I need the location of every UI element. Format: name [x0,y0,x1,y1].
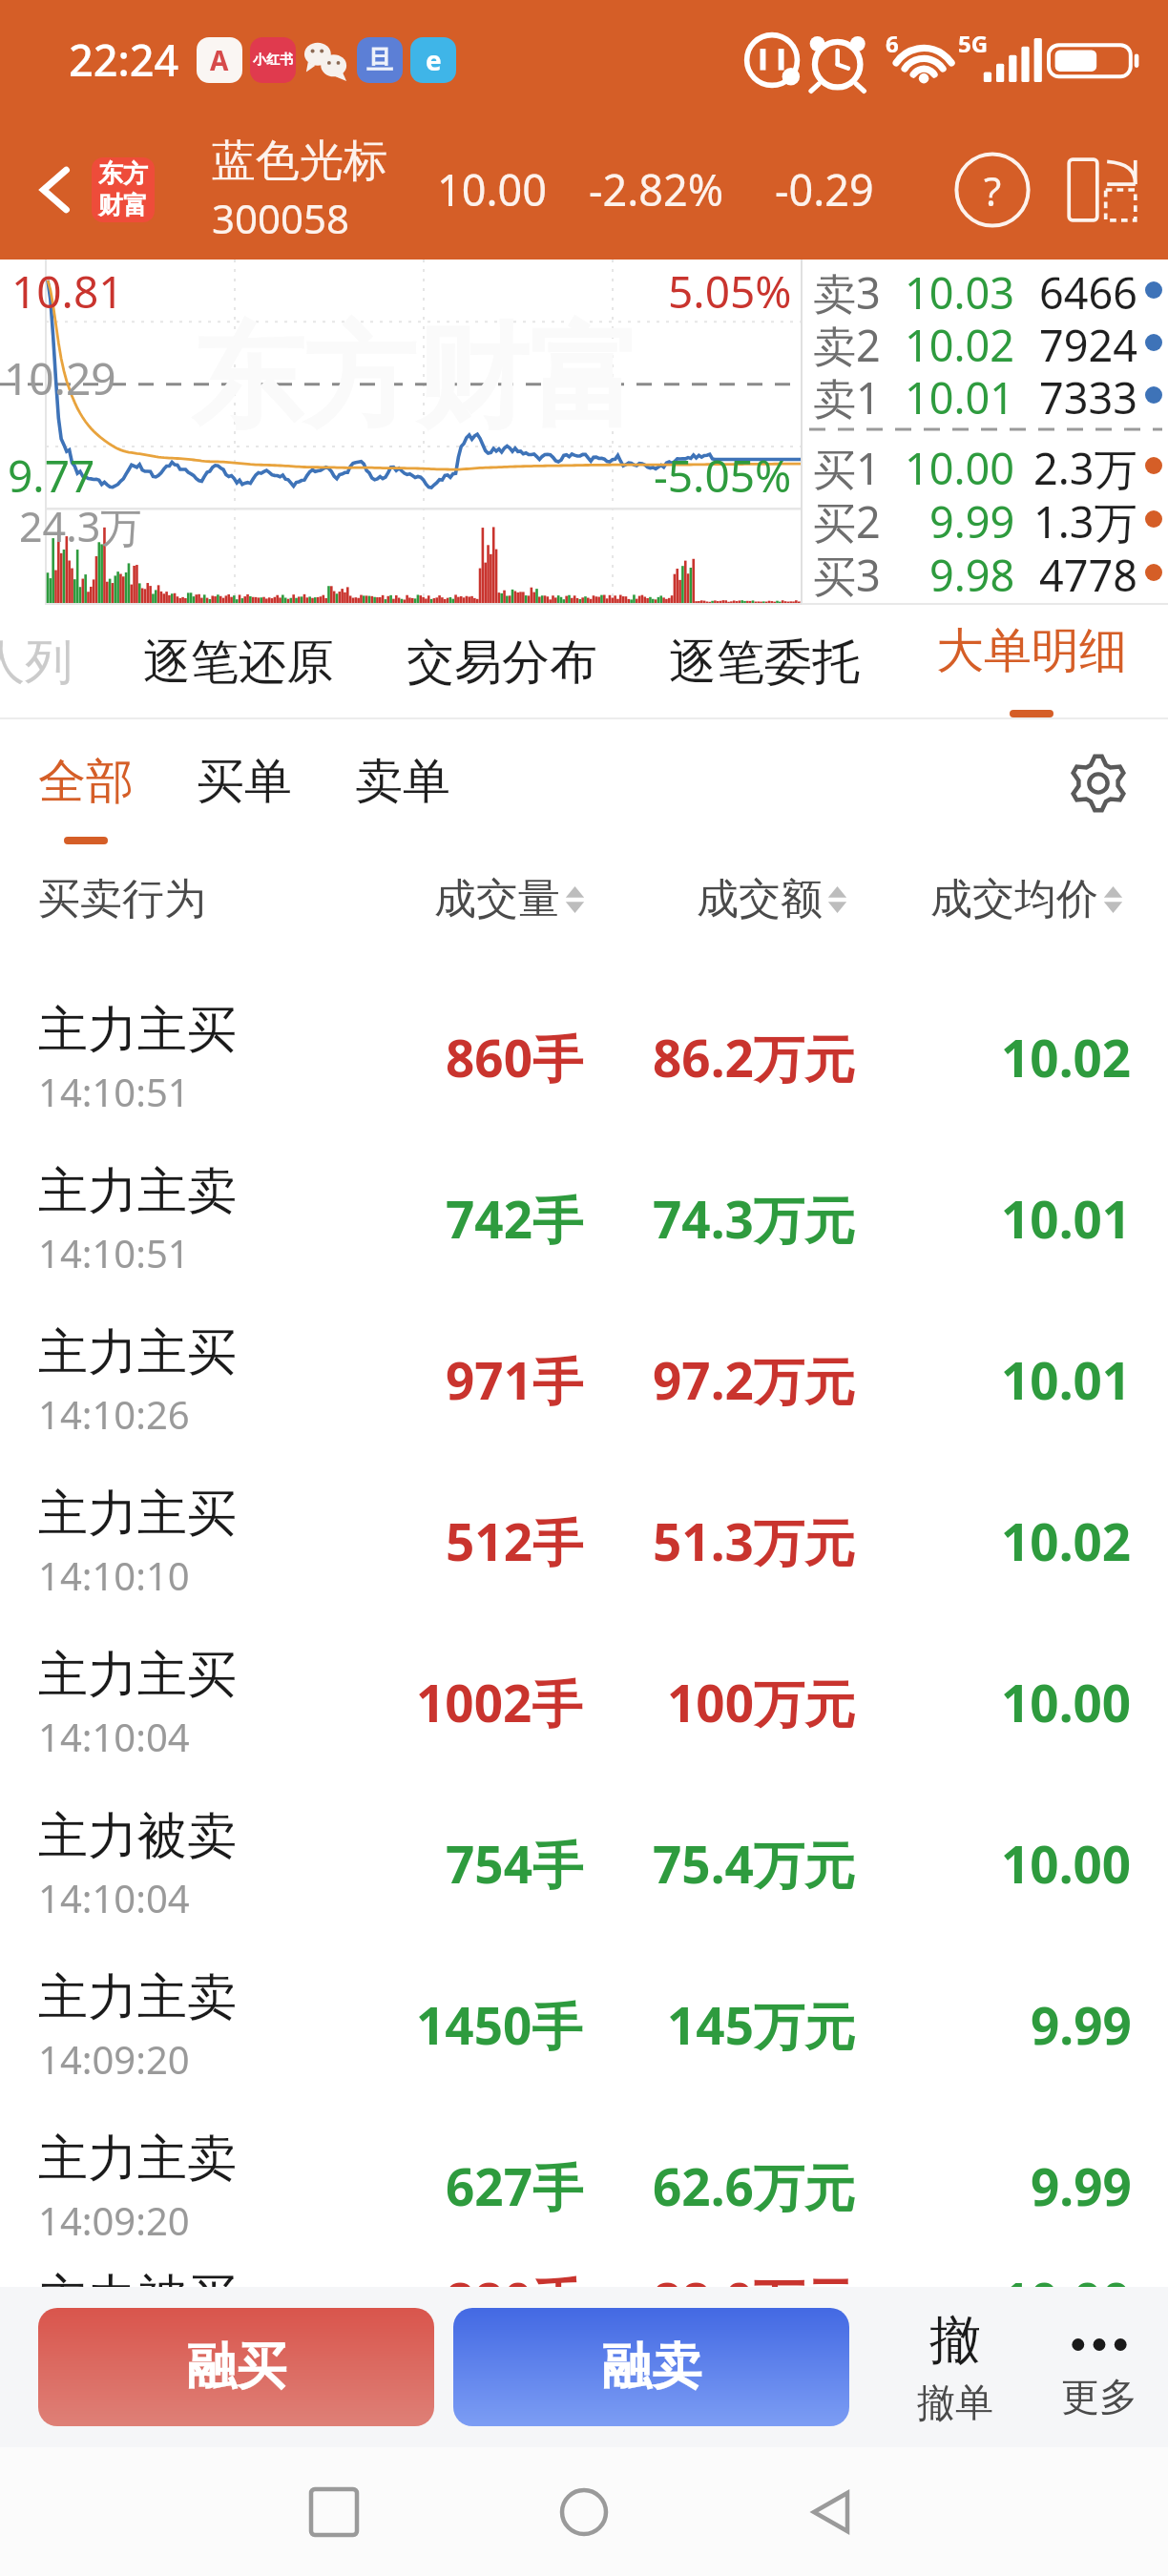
button[interactable]: 全部 [38,752,134,844]
staticText: 融买 [187,2336,286,2399]
button[interactable]: 卖1 [813,368,1168,422]
button[interactable]: 主力主买 [0,980,1168,1141]
button[interactable]: 主力主买 [0,1625,1168,1786]
staticText: 买单 [197,752,292,812]
staticText: 742手 [446,1184,583,1253]
button[interactable]: 成交均价 [930,873,1123,925]
button[interactable]: 买2 [813,492,1168,546]
staticText: 51.3万元 [653,1506,855,1575]
staticText: 9.99 [929,492,1015,546]
staticText: 10.02 [905,316,1015,368]
button[interactable]: 卖单 [355,752,450,844]
staticText: 14:09:20 [38,2194,190,2246]
staticText: -2.82% [589,160,724,218]
staticText: 主力主买 [38,1483,237,1546]
staticText: 大单明细 [936,621,1127,681]
button[interactable]: 主力被卖 [0,1786,1168,1947]
button[interactable]: 成交额 [697,873,847,925]
staticText: 6466 [1039,263,1137,316]
button[interactable]: 主力主卖 [0,2109,1168,2270]
staticText: 22:24 [69,31,179,89]
staticText: 1450手 [416,1990,583,2059]
button[interactable]: 主力主买 [0,1302,1168,1464]
staticText: 主力主买 [38,1644,237,1707]
staticText: 14:10:04 [38,1872,190,1923]
staticText: 14:10:04 [38,1711,190,1762]
staticText: 买2 [813,492,881,546]
staticText: 10.02 [1001,1023,1132,1091]
staticText: 卖1 [813,368,881,422]
button[interactable]: 卖2 [813,316,1168,368]
staticText: 主力被买 [38,2267,237,2296]
button[interactable]: More [1037,2287,1161,2447]
button[interactable]: 撤 [893,2287,1017,2447]
staticText: 100万元 [667,1668,855,1736]
button[interactable]: Home [536,2464,632,2560]
staticText: 东方财富 [191,307,641,449]
staticText: 撤 [929,2308,981,2373]
button[interactable]: 买3 [813,546,1168,599]
button[interactable]: 主力主买 [0,1464,1168,1625]
staticText: 主力主卖 [38,1966,237,2029]
staticText: 6 [886,28,899,59]
staticText: 74.3万元 [653,1184,855,1253]
staticText: 10.29 [4,348,116,408]
staticText: 512手 [446,1506,583,1575]
staticText: 9.99 [1031,1990,1132,2059]
button[interactable]: 交易分布 [370,605,633,719]
staticText: 754手 [446,1829,583,1898]
staticText: 逐笔还原 [143,633,334,693]
button[interactable]: 融买 [38,2308,434,2426]
staticText: 14:10:26 [38,1388,190,1440]
button[interactable]: Settings [1061,746,1136,821]
staticText: 卖2 [813,316,881,368]
staticText: 10.01 [1001,1345,1132,1414]
staticText: 86.2万元 [653,1023,855,1091]
staticText: 买卖行为 [38,873,206,925]
staticText: 7924 [1039,316,1137,368]
staticText: 14:10:51 [38,1227,190,1278]
staticText: 成交均价 [930,873,1098,925]
staticText: 10.81 [11,261,124,322]
staticText: 145万元 [667,1990,855,2059]
staticText: 更多 [1061,2373,1137,2420]
staticText: -5.05% [654,446,792,506]
button[interactable]: 逐笔还原 [107,605,370,719]
staticText: 14:10:51 [38,1066,190,1117]
staticText: 10.01 [905,368,1015,422]
button[interactable]: 卖3 [813,263,1168,316]
staticText: 75.4万元 [653,1829,855,1898]
button[interactable]: 主力主卖 [0,1141,1168,1302]
staticText: 10.00 [1001,1668,1132,1736]
staticText: -0.29 [775,160,874,218]
staticText: 880手 [446,2266,583,2296]
button[interactable]: 人列 [0,605,107,719]
staticText: 东方 [98,158,148,190]
staticText: 4778 [1039,546,1137,599]
staticText: A [210,42,229,78]
button[interactable]: Rotate screen [1050,137,1155,242]
staticText: 财富 [98,190,148,221]
button[interactable]: 买1 [813,439,1168,492]
button[interactable]: Back [8,119,103,260]
staticText: 蓝色光标 [212,134,387,189]
staticText: 成交量 [434,873,560,925]
staticText: 10.00 [1001,1829,1132,1898]
button[interactable]: Back [784,2464,880,2560]
button[interactable]: Recent apps [286,2464,382,2560]
staticText: 2.3万 [1033,439,1137,492]
button[interactable]: 大单明细 [895,605,1168,719]
staticText: 9.77 [8,446,95,506]
button[interactable]: Help [940,137,1045,242]
staticText: 主力主卖 [38,1160,237,1223]
staticText: 62.6万元 [653,2151,855,2220]
staticText: 旦 [366,44,393,77]
button[interactable]: 成交量 [434,873,585,925]
staticText: 买3 [813,546,881,599]
staticText: 860手 [446,1023,583,1091]
button[interactable]: 主力主卖 [0,1947,1168,2109]
button[interactable]: 主力被买 [0,2270,1168,2299]
button[interactable]: 买单 [197,752,292,844]
button[interactable]: 融卖 [453,2308,849,2426]
button[interactable]: 逐笔委托 [633,605,895,719]
